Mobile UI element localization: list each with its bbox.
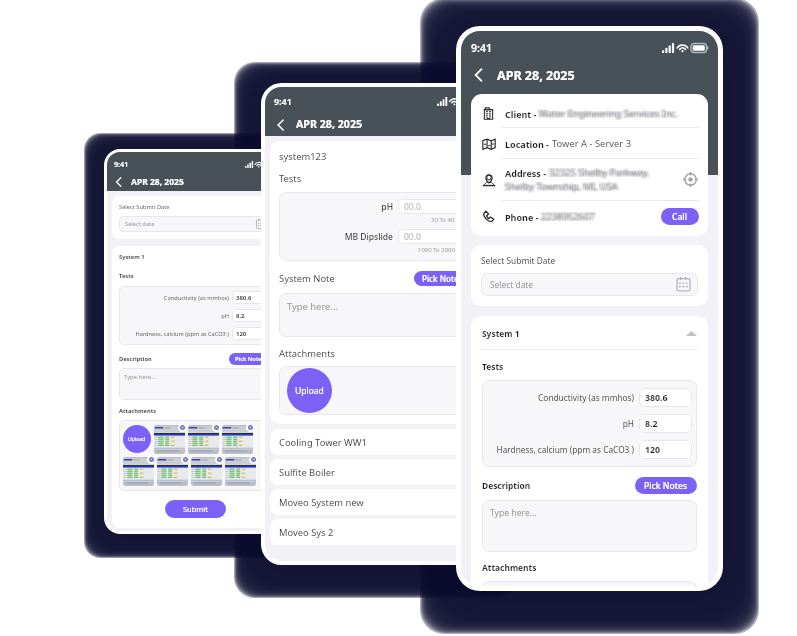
staticText: APR 28, 2025 bbox=[497, 67, 575, 84]
button[interactable]: Submit bbox=[165, 500, 226, 518]
staticText: Water Engineering Services Inc. bbox=[539, 106, 679, 119]
button[interactable]: 00.0 bbox=[398, 199, 465, 214]
button[interactable]: 8.2 bbox=[639, 414, 692, 433]
staticText: 2238952607 bbox=[543, 209, 597, 222]
button[interactable] bbox=[191, 457, 222, 486]
staticText: 32325 Shelby Parkway, bbox=[550, 166, 651, 179]
button[interactable]: Remove attachment bbox=[246, 423, 255, 432]
button[interactable]: Sulfite Boiler bbox=[270, 459, 480, 485]
staticText: Pick Notes bbox=[235, 355, 265, 363]
button[interactable]: 380.6 bbox=[639, 388, 692, 407]
staticText: 32325 Shelby Parkway, bbox=[548, 165, 649, 178]
button[interactable]: Back bbox=[470, 66, 488, 84]
staticText: 32325 Shelby Parkway, bbox=[548, 165, 649, 178]
button[interactable]: Remove attachment bbox=[147, 455, 156, 464]
staticText: Water Engineering Services Inc. bbox=[538, 108, 678, 121]
button[interactable]: Remove attachment bbox=[249, 455, 258, 464]
staticText: Shelby Township, MI, USA bbox=[506, 180, 619, 193]
button[interactable] bbox=[188, 425, 219, 454]
button[interactable] bbox=[154, 425, 185, 454]
button[interactable]: Moveo System new bbox=[270, 489, 480, 515]
staticText: Shelby Township, MI, USA bbox=[504, 179, 617, 192]
staticText: Shelby Township, MI, USA bbox=[507, 181, 620, 194]
button[interactable]: Select date bbox=[119, 216, 271, 232]
staticText: Water Engineering Services Inc. bbox=[539, 108, 679, 121]
staticText: 32325 Shelby Parkway, bbox=[550, 165, 651, 178]
staticText: 32325 Shelby Parkway, bbox=[551, 167, 652, 180]
staticText: 9:41 bbox=[274, 95, 292, 107]
button[interactable]: Remove attachment bbox=[181, 455, 190, 464]
staticText: Water Engineering Services Inc. bbox=[539, 107, 679, 120]
button[interactable]: Back bbox=[273, 117, 288, 132]
staticText: 32325 Shelby Parkway, bbox=[551, 165, 652, 178]
staticText: 2238952607 bbox=[540, 211, 594, 224]
staticText: Upload bbox=[295, 385, 324, 397]
button[interactable]: Pick Notes bbox=[229, 353, 271, 365]
staticText: Moveo Sys 2 bbox=[279, 526, 334, 539]
button[interactable]: Locate on map bbox=[682, 171, 699, 188]
staticText: Attachments bbox=[119, 407, 157, 415]
staticText: 2238952607 bbox=[542, 211, 596, 224]
button[interactable]: Client - bbox=[480, 99, 699, 127]
button[interactable]: Remove attachment bbox=[212, 423, 221, 432]
staticText: 120 bbox=[645, 444, 661, 456]
staticText: 8.2 bbox=[236, 312, 245, 320]
button[interactable]: Call bbox=[661, 208, 699, 225]
button[interactable]: 120 bbox=[639, 440, 692, 459]
staticText: 9:41 bbox=[114, 159, 129, 169]
button[interactable]: System 1 bbox=[482, 326, 697, 340]
staticText: Attachments bbox=[482, 562, 537, 573]
button[interactable]: 00.0 bbox=[398, 229, 465, 244]
staticText: 2238952607 bbox=[541, 211, 595, 224]
staticText: Shelby Township, MI, USA bbox=[503, 180, 616, 193]
staticText: Address - bbox=[505, 167, 549, 179]
staticText: 00.0 bbox=[404, 201, 421, 213]
staticText: Water Engineering Services Inc. bbox=[540, 106, 680, 119]
staticText: Type here... bbox=[287, 300, 338, 313]
staticText: Description bbox=[482, 480, 531, 491]
button[interactable] bbox=[157, 457, 188, 486]
staticText: Shelby Township, MI, USA bbox=[507, 179, 620, 192]
button[interactable]: Remove attachment bbox=[178, 423, 187, 432]
staticText: 2238952607 bbox=[542, 209, 596, 222]
button[interactable]: Location - bbox=[480, 128, 699, 158]
staticText: Shelby Township, MI, USA bbox=[503, 181, 616, 194]
button[interactable]: Remove attachment bbox=[215, 455, 224, 464]
staticText: 32325 Shelby Parkway, bbox=[550, 167, 651, 180]
staticText: Shelby Township, MI, USA bbox=[504, 181, 617, 194]
button[interactable] bbox=[225, 457, 256, 486]
button[interactable] bbox=[123, 457, 154, 486]
button[interactable]: Address - bbox=[480, 159, 699, 200]
staticText: 2238952607 bbox=[540, 210, 594, 223]
button[interactable]: Moveo Sys 2 bbox=[270, 519, 480, 545]
button[interactable]: Back bbox=[113, 176, 125, 188]
button[interactable]: Pick Notes bbox=[635, 477, 697, 494]
button[interactable]: 380.6 bbox=[232, 291, 268, 304]
button[interactable]: Upload bbox=[287, 368, 332, 413]
button[interactable]: Pick Notes bbox=[414, 271, 471, 286]
staticText: pH bbox=[122, 312, 229, 320]
staticText: Shelby Township, MI, USA bbox=[506, 181, 619, 194]
staticText: Water Engineering Services Inc. bbox=[540, 106, 680, 119]
staticText: Select date bbox=[490, 279, 534, 290]
button[interactable] bbox=[222, 425, 253, 454]
staticText: Pick Notes bbox=[644, 480, 688, 492]
button[interactable]: Cooling Tower WW1 bbox=[270, 429, 480, 455]
button[interactable]: Upload bbox=[123, 425, 151, 453]
staticText: Shelby Township, MI, USA bbox=[506, 179, 619, 192]
staticText: 2238952607 bbox=[541, 210, 595, 223]
staticText: Select Submit Date bbox=[119, 203, 170, 211]
button[interactable]: 8.2 bbox=[232, 309, 268, 322]
button[interactable]: 120 bbox=[232, 327, 268, 340]
staticText: Hardness, calcium (ppm as CaCO3 ) bbox=[487, 444, 634, 455]
staticText: system123 bbox=[279, 150, 327, 163]
button[interactable]: Type here... bbox=[482, 500, 697, 552]
staticText: Water Engineering Services Inc. bbox=[538, 106, 678, 119]
staticText: Shelby Township, MI, USA bbox=[504, 181, 617, 194]
staticText: 32325 Shelby Parkway, bbox=[548, 166, 649, 179]
button[interactable]: Phone - bbox=[480, 201, 699, 231]
button[interactable]: Type here... bbox=[279, 293, 471, 337]
button[interactable]: Type here... bbox=[119, 368, 271, 400]
staticText: Water Engineering Services Inc. bbox=[540, 107, 680, 120]
button[interactable]: Select date bbox=[481, 273, 698, 296]
